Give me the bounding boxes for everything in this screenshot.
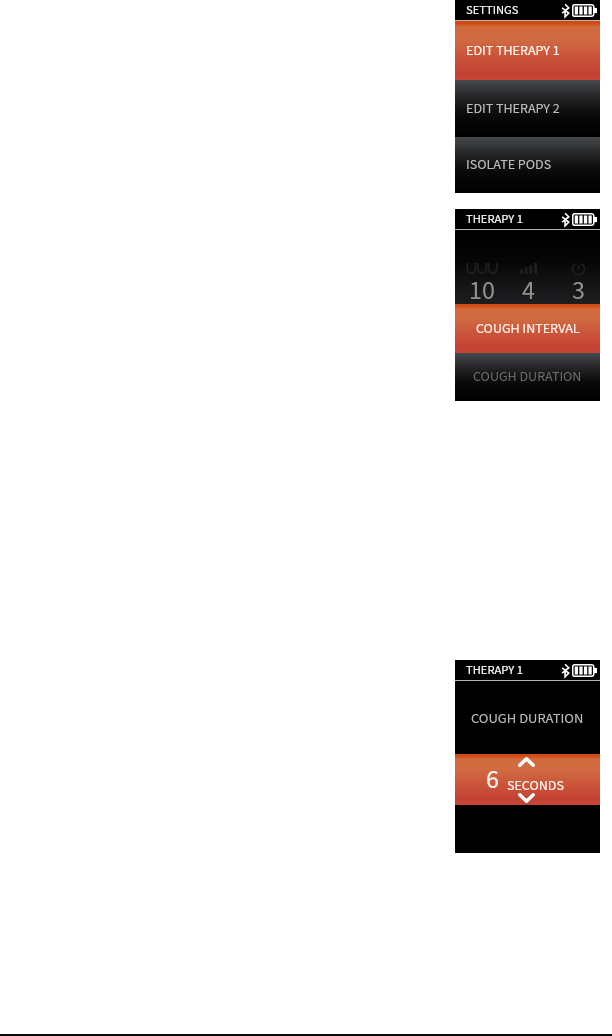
button[interactable]: EDIT THERAPY 2 <box>455 80 600 137</box>
button[interactable]: ISOLATE PODS <box>455 137 600 193</box>
other: Bluetooth connected <box>562 213 569 226</box>
staticText: ISOLATE PODS <box>466 155 552 175</box>
other: Battery full <box>572 213 597 226</box>
staticText: THERAPY 1 <box>466 210 523 228</box>
staticText: COUGH DURATION <box>471 708 584 729</box>
button[interactable]: 6 <box>455 754 600 805</box>
staticText: EDIT THERAPY 2 <box>466 99 560 119</box>
staticText: COUGH DURATION <box>473 367 582 387</box>
button[interactable]: COUGH DURATION <box>455 353 600 401</box>
other: Battery full <box>572 4 597 17</box>
other: Battery full <box>572 664 597 677</box>
staticText: THERAPY 1 <box>466 661 523 679</box>
staticText: SETTINGS <box>466 1 519 19</box>
staticText: SECONDS <box>507 776 564 796</box>
button[interactable]: COUGH INTERVAL <box>455 304 600 353</box>
staticText: 4 <box>522 272 535 309</box>
staticText: EDIT THERAPY 1 <box>466 41 560 61</box>
other: Decrease <box>518 793 535 803</box>
other: Bluetooth connected <box>562 664 569 677</box>
other: Bluetooth connected <box>562 4 569 17</box>
button[interactable]: EDIT THERAPY 1 <box>455 21 600 80</box>
other: Increase <box>518 757 535 767</box>
staticText: 3 <box>572 272 585 309</box>
staticText: COUGH INTERVAL <box>476 319 580 339</box>
staticText: 10 <box>469 272 495 309</box>
staticText: 6 <box>486 761 499 798</box>
